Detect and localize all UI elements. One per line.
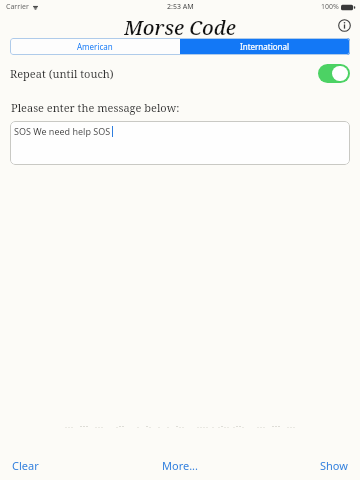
staticText: Show: [320, 458, 348, 473]
button[interactable]: American: [10, 38, 180, 55]
button[interactable]: SOS We need help SOS: [10, 121, 350, 165]
staticText: 2:53 AM: [167, 2, 194, 12]
staticText: Carrier: [6, 2, 29, 12]
staticText: 100%: [321, 2, 339, 12]
button[interactable]: International: [180, 38, 350, 55]
staticText: SOS We need help SOS: [14, 125, 111, 137]
staticText: Repeat (until touch): [10, 66, 114, 81]
staticText: International: [240, 41, 290, 52]
staticText: American: [77, 41, 113, 52]
staticText: Morse Code: [124, 14, 236, 36]
button[interactable]: More...: [120, 450, 240, 480]
staticText: More...: [162, 458, 199, 473]
button[interactable]: Info: [334, 15, 354, 35]
staticText: ... --- ... .-- . -. . . -.. .... . .-..…: [0, 423, 360, 430]
button[interactable]: Clear: [0, 450, 120, 480]
button[interactable]: Show: [240, 450, 360, 480]
staticText: Please enter the message below:: [11, 100, 180, 115]
button[interactable]: Repeat toggle, on: [318, 64, 350, 83]
staticText: Clear: [12, 458, 39, 473]
